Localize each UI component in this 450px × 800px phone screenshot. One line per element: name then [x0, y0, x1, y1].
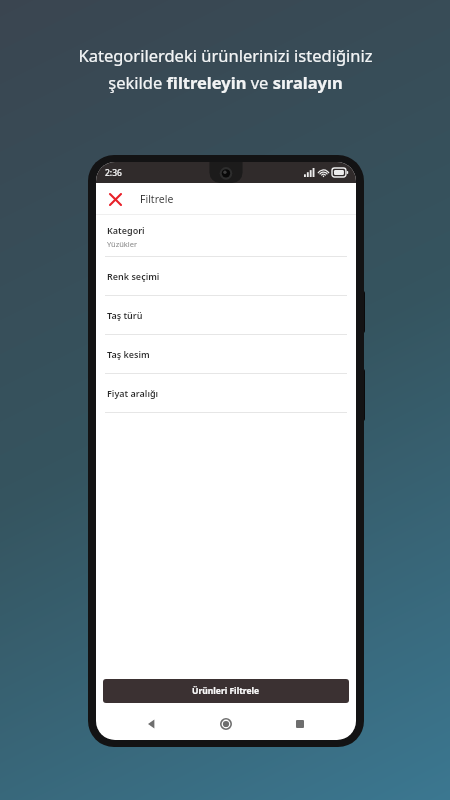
button[interactable]: Renk seçimi: [96, 257, 356, 295]
staticText: Yüzükler: [107, 239, 138, 249]
staticText: Taş kesim: [107, 348, 150, 360]
button[interactable]: Taş türü: [96, 296, 356, 334]
staticText: 2:36: [105, 167, 122, 179]
staticText: Kategorilerdeki ürünlerinizi istediğiniz: [78, 44, 373, 66]
button[interactable]: Close: [102, 186, 128, 212]
button[interactable]: Back: [136, 708, 168, 740]
staticText: Kategori: [107, 224, 145, 236]
button[interactable]: Home: [210, 708, 242, 740]
button[interactable]: Fiyat aralığı: [96, 374, 356, 412]
staticText: Ürünleri Filtrele: [192, 685, 260, 697]
button[interactable]: Recents: [284, 708, 316, 740]
staticText: Filtrele: [140, 192, 174, 206]
button[interactable]: Taş kesim: [96, 335, 356, 373]
staticText: Renk seçimi: [107, 270, 160, 282]
staticText: şekilde filtreleyin ve sıralayın: [108, 71, 343, 93]
staticText: Fiyat aralığı: [107, 387, 159, 399]
button[interactable]: Kategori: [96, 215, 356, 256]
button[interactable]: Ürünleri Filtrele: [103, 679, 349, 703]
staticText: Taş türü: [107, 309, 143, 321]
